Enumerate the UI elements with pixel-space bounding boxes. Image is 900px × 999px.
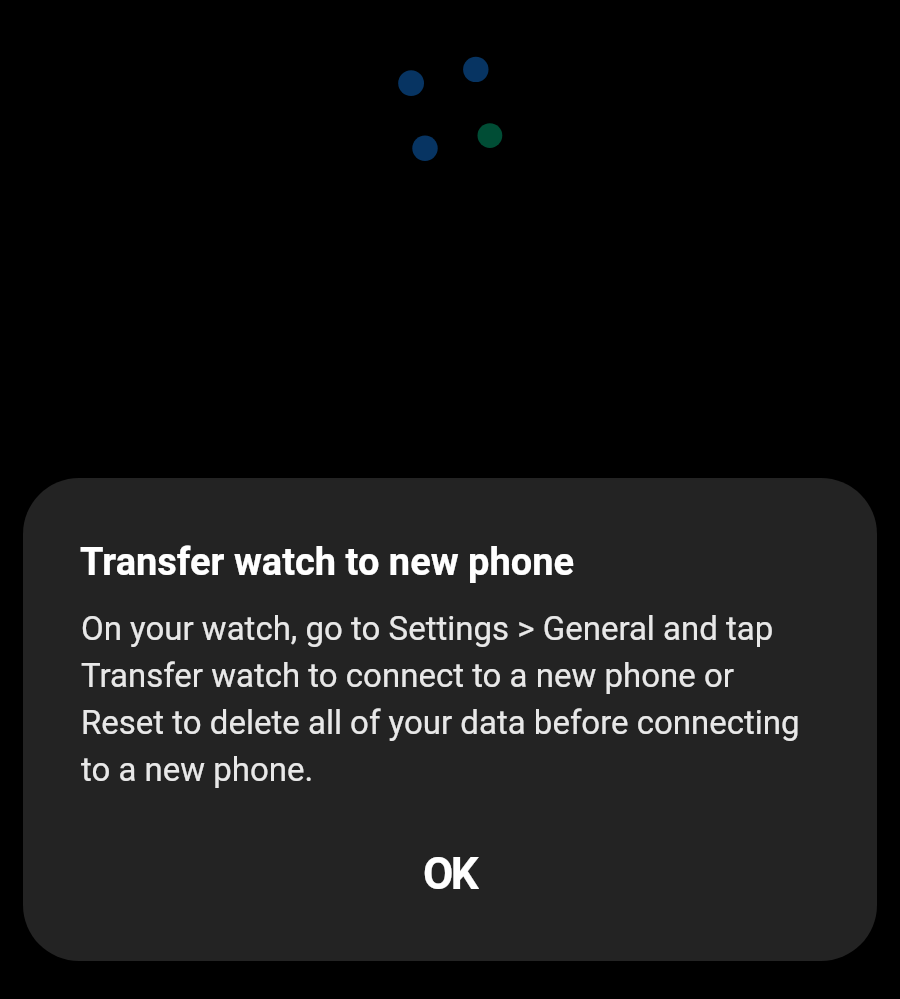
- other: Loading: [0, 0, 900, 999]
- staticText: Transfer watch to new phone: [80, 540, 575, 585]
- button[interactable]: OK: [393, 836, 507, 912]
- staticText: OK: [423, 848, 477, 900]
- staticText: On your watch, go to Settings > General …: [81, 609, 841, 789]
